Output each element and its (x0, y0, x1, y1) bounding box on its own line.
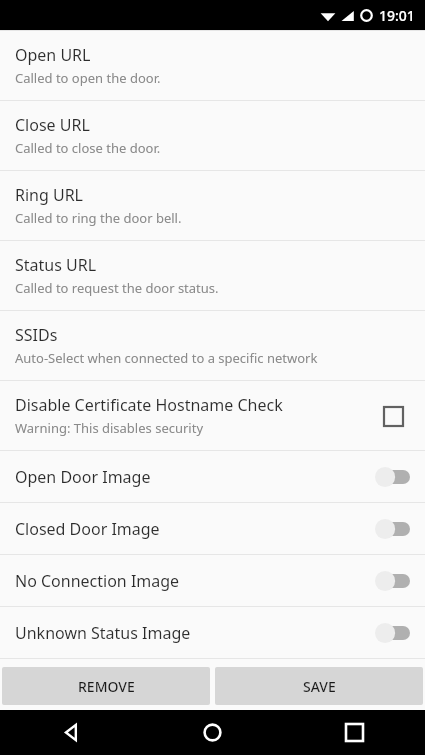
button[interactable]: REMOVE (2, 667, 210, 705)
button[interactable]: Recent apps (283, 710, 425, 755)
other: No Connection Image toggle (374, 569, 410, 593)
other: Unknown Status Image toggle (374, 621, 410, 645)
button[interactable]: Open URL (0, 31, 425, 100)
staticText: No Connection Image (15, 570, 374, 592)
button[interactable]: Close URL (0, 101, 425, 170)
staticText: Called to close the door. (15, 139, 161, 157)
staticText: Open Door Image (15, 466, 374, 488)
staticText: REMOVE (78, 677, 135, 696)
button[interactable]: Status URL (0, 241, 425, 310)
button[interactable]: Ring URL (0, 171, 425, 240)
staticText: Called to ring the door bell. (15, 209, 182, 227)
staticText: 19:01 (379, 6, 415, 25)
staticText: Unknown Status Image (15, 622, 374, 644)
button[interactable]: SSIDs (0, 311, 425, 380)
staticText: Called to open the door. (15, 69, 161, 87)
button[interactable]: No Connection Image (0, 555, 425, 606)
other: Closed Door Image toggle (374, 517, 410, 541)
staticText: SSIDs (15, 324, 58, 346)
button[interactable]: Unknown Status Image (0, 607, 425, 658)
other: Open Door Image toggle (374, 465, 410, 489)
staticText: Closed Door Image (15, 518, 374, 540)
button[interactable]: Back (0, 710, 141, 755)
staticText: Status URL (15, 254, 97, 276)
staticText: Close URL (15, 114, 90, 136)
staticText: Auto-Select when connected to a specific… (15, 349, 318, 367)
staticText: Disable Certificate Hostname Check (15, 394, 283, 416)
staticText: Called to request the door status. (15, 279, 219, 297)
button[interactable]: Home (141, 710, 283, 755)
other: Disable Certificate Hostname Check check… (376, 399, 410, 433)
staticText: Open URL (15, 44, 91, 66)
button[interactable]: Closed Door Image (0, 503, 425, 554)
button[interactable]: Open Door Image (0, 451, 425, 502)
button[interactable]: SAVE (215, 667, 423, 705)
staticText: Warning: This disables security (15, 419, 204, 437)
staticText: SAVE (303, 677, 336, 696)
button[interactable]: Disable Certificate Hostname Check (0, 381, 425, 450)
staticText: Ring URL (15, 184, 84, 206)
